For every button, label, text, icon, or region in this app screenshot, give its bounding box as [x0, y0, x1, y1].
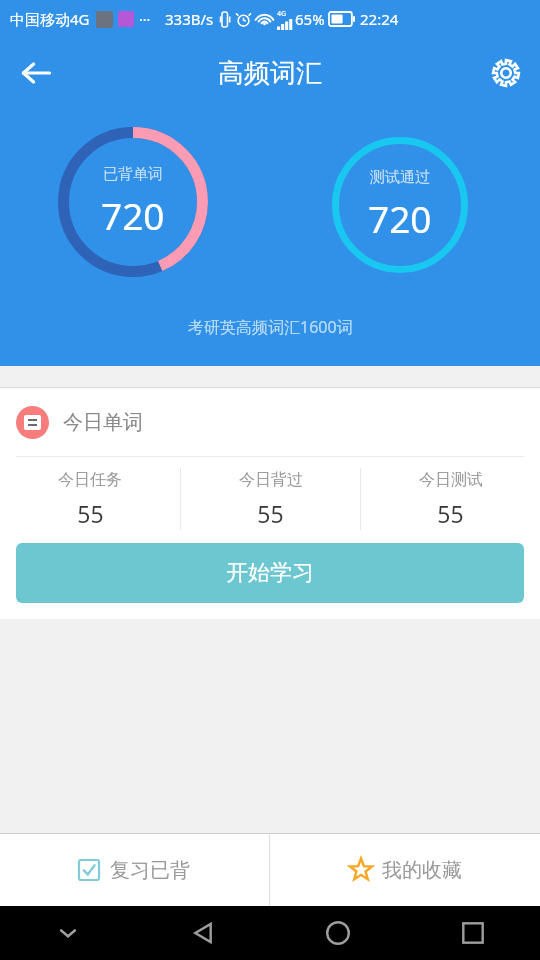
- staticText: 今日单词: [63, 410, 143, 435]
- staticText: 65%: [295, 9, 325, 29]
- button[interactable]: 今日测试: [361, 457, 540, 541]
- staticText: 高频词汇: [218, 57, 322, 90]
- staticText: 今日任务: [58, 470, 122, 490]
- staticText: 今日背过: [239, 470, 303, 490]
- button[interactable]: 我的收藏: [270, 834, 540, 906]
- staticText: 55: [77, 498, 104, 529]
- button[interactable]: 复习已背: [0, 834, 269, 906]
- staticText: 55: [437, 498, 464, 529]
- staticText: 复习已背: [110, 858, 190, 883]
- button[interactable]: Hide keyboard: [0, 906, 135, 960]
- staticText: 今日测试: [419, 470, 483, 490]
- staticText: 720: [368, 193, 432, 243]
- button[interactable]: Home: [270, 906, 405, 960]
- staticText: 720: [101, 190, 165, 240]
- staticText: 测试通过: [370, 168, 430, 187]
- staticText: 已背单词: [103, 165, 163, 184]
- staticText: ···: [139, 10, 151, 29]
- button[interactable]: Back: [135, 906, 270, 960]
- staticText: 中国移动4G: [10, 9, 90, 29]
- staticText: 考研英高频词汇1600词: [188, 316, 353, 338]
- staticText: 开始学习: [226, 559, 314, 587]
- staticText: 我的收藏: [382, 858, 462, 883]
- button[interactable]: Back: [8, 45, 64, 101]
- button[interactable]: 今日背过: [181, 457, 360, 541]
- button[interactable]: Settings: [480, 47, 532, 99]
- staticText: 4G: [277, 9, 287, 19]
- button[interactable]: 今日任务: [0, 457, 180, 541]
- staticText: 55: [257, 498, 284, 529]
- staticText: 333B/s: [165, 9, 214, 29]
- button[interactable]: 今日单词: [0, 388, 540, 456]
- button[interactable]: 开始学习: [16, 543, 524, 603]
- button[interactable]: Recent apps: [405, 906, 540, 960]
- staticText: 22:24: [360, 9, 399, 29]
